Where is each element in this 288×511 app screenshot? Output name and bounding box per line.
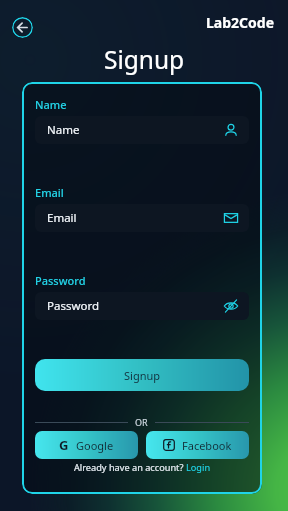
staticText: Name bbox=[47, 122, 224, 138]
button[interactable]: Password bbox=[35, 292, 249, 320]
staticText: Already have an account? bbox=[74, 461, 186, 474]
staticText: Facebook bbox=[182, 438, 232, 453]
staticText: Email bbox=[47, 210, 224, 226]
staticText: G bbox=[59, 436, 69, 454]
staticText: Signup bbox=[104, 43, 185, 76]
staticText: Lab2Code bbox=[206, 13, 275, 32]
staticText: Password bbox=[47, 298, 224, 314]
staticText: Password bbox=[35, 273, 86, 288]
staticText: Name bbox=[35, 97, 67, 112]
button[interactable]: Login bbox=[186, 461, 211, 474]
button[interactable]: Name bbox=[35, 116, 249, 144]
button[interactable]: G bbox=[35, 431, 138, 459]
button[interactable]: Email bbox=[35, 204, 249, 232]
staticText: Email bbox=[35, 185, 64, 200]
button[interactable]: Back bbox=[12, 17, 33, 38]
staticText: Signup bbox=[124, 368, 161, 383]
button[interactable]: Facebook bbox=[146, 431, 249, 459]
button[interactable]: Signup bbox=[35, 359, 249, 391]
staticText: Google bbox=[76, 438, 114, 453]
staticText: OR bbox=[135, 416, 148, 428]
